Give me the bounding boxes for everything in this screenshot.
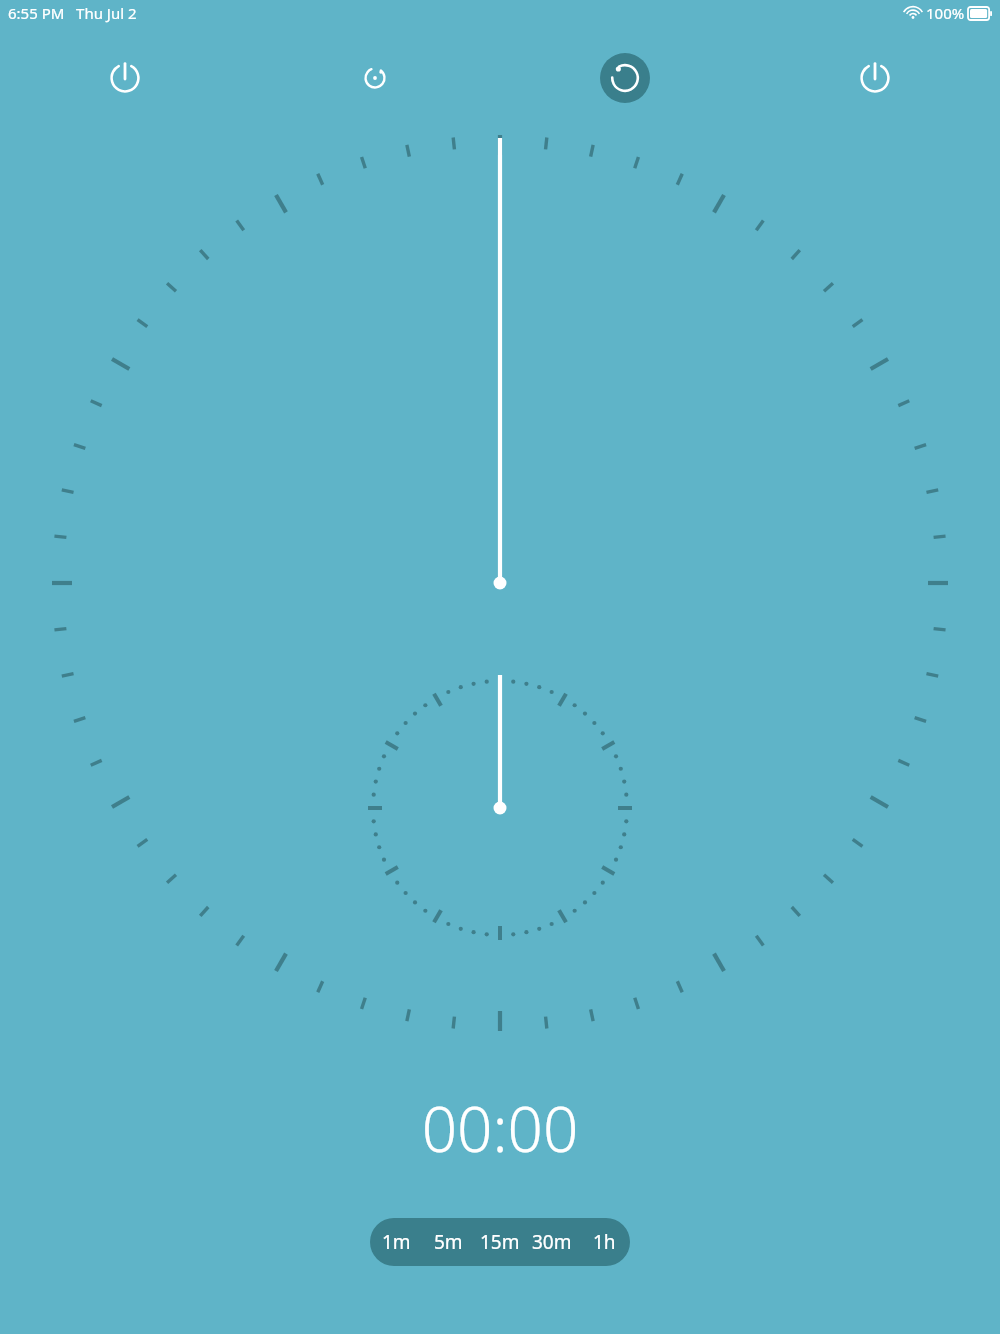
- button[interactable]: Timer 1: [100, 53, 150, 103]
- staticText: 5m: [434, 1229, 463, 1255]
- staticText: 15m: [480, 1229, 520, 1255]
- staticText: 1m: [382, 1229, 411, 1255]
- button[interactable]: Countdown: [600, 53, 650, 103]
- staticText: 6:55 PM Thu Jul 2: [8, 3, 137, 23]
- staticText: 1h: [593, 1229, 616, 1255]
- button[interactable]: 15m: [474, 1218, 526, 1266]
- staticText: 100%: [926, 3, 965, 23]
- button[interactable]: 1h: [578, 1218, 630, 1266]
- button[interactable]: 30m: [526, 1218, 578, 1266]
- staticText: 30m: [532, 1229, 572, 1255]
- button[interactable]: Stopwatch: [350, 53, 400, 103]
- button[interactable]: Timer 2: [850, 53, 900, 103]
- staticText: 00:00: [0, 1086, 1000, 1170]
- button[interactable]: 1m: [370, 1218, 422, 1266]
- button[interactable]: 5m: [422, 1218, 474, 1266]
